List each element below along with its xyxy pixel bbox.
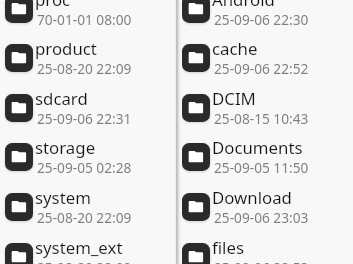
staticText: 25-09-05 02:28: [37, 158, 132, 177]
staticText: 25-09-06 23:03: [214, 208, 309, 227]
staticText: 25-08-20 22:09: [37, 258, 132, 264]
staticText: DCIM: [212, 87, 256, 110]
staticText: storage: [35, 136, 96, 159]
staticText: 25-09-06 22:30: [214, 10, 309, 29]
button[interactable]: DCIM: [177, 83, 353, 133]
button[interactable]: Android: [177, 0, 353, 34]
button[interactable]: system: [0, 182, 171, 232]
staticText: cache: [212, 37, 258, 60]
staticText: product: [35, 37, 97, 60]
button[interactable]: product: [0, 33, 171, 83]
staticText: 25-08-20 22:09: [37, 59, 132, 78]
staticText: 70-01-01 08:00: [37, 10, 132, 29]
button[interactable]: proc: [0, 0, 171, 34]
staticText: files: [212, 236, 244, 259]
staticText: sdcard: [35, 87, 88, 110]
button[interactable]: files: [177, 232, 353, 264]
staticText: 25-09-06 22:52: [214, 59, 309, 78]
staticText: Documents: [212, 136, 303, 159]
button[interactable]: system_ext: [0, 232, 171, 264]
staticText: Download: [212, 186, 292, 209]
staticText: proc: [35, 0, 71, 11]
button[interactable]: cache: [177, 33, 353, 83]
staticText: system: [35, 186, 91, 209]
button[interactable]: storage: [0, 132, 171, 182]
staticText: 25-09-06 22:53: [214, 258, 309, 264]
button[interactable]: Documents: [177, 132, 353, 182]
staticText: Android: [212, 0, 275, 11]
staticText: system_ext: [35, 236, 123, 259]
staticText: 25-08-15 10:43: [214, 109, 309, 128]
staticText: 25-08-20 22:09: [37, 208, 132, 227]
staticText: 25-09-06 22:31: [37, 109, 132, 128]
button[interactable]: sdcard: [0, 83, 171, 133]
button[interactable]: Download: [177, 182, 353, 232]
staticText: 25-09-05 11:50: [214, 158, 309, 177]
